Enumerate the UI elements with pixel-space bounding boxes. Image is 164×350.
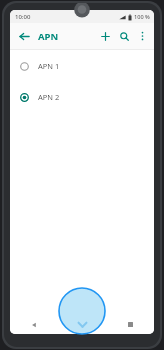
button[interactable]: Home [58, 287, 106, 335]
button[interactable]: APN 2 [10, 81, 154, 112]
button[interactable]: More options [134, 28, 150, 44]
staticText: APN 2 [38, 92, 60, 102]
button[interactable]: Search [115, 27, 133, 45]
staticText: 100 % [134, 13, 150, 21]
button[interactable]: Add [96, 27, 114, 45]
button[interactable]: Recents [106, 315, 154, 334]
button[interactable]: Home [58, 315, 106, 334]
staticText: 10:00 [15, 13, 31, 21]
button[interactable]: Back [10, 315, 58, 334]
staticText: APN 1 [38, 61, 60, 71]
staticText: APN [38, 30, 59, 43]
button[interactable]: APN 1 [10, 50, 154, 81]
button[interactable]: Back [15, 27, 33, 45]
